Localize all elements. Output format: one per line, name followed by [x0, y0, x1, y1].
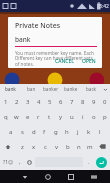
staticText: back [86, 86, 97, 92]
button[interactable]: j [72, 124, 83, 139]
button[interactable]: Back [13, 170, 36, 183]
button[interactable]: n [73, 139, 84, 154]
staticText: y [59, 113, 63, 121]
staticText: 3:42 [99, 3, 109, 10]
button[interactable]: e [22, 109, 33, 124]
staticText: o [92, 113, 96, 121]
staticText: 9 [92, 98, 96, 106]
staticText: 8 [81, 98, 85, 106]
button[interactable]: 5 [44, 94, 55, 109]
staticText: u [70, 113, 74, 121]
button[interactable]: b [62, 139, 73, 154]
staticText: d [32, 128, 36, 136]
staticText: 7 [70, 98, 74, 106]
staticText: p [103, 113, 107, 121]
staticText: q [4, 113, 8, 121]
button[interactable]: x [28, 139, 40, 154]
button[interactable]: k [83, 124, 94, 139]
staticText: g [54, 128, 58, 136]
button[interactable]: m [84, 139, 95, 154]
staticText: bank [15, 35, 31, 44]
staticText: ban [27, 86, 36, 92]
button[interactable]: Recent apps [59, 170, 82, 183]
staticText: i [82, 113, 84, 121]
staticText: f [43, 128, 46, 136]
staticText: k [87, 128, 91, 136]
button[interactable]: Backspace [95, 139, 110, 154]
button[interactable]: v [51, 139, 62, 154]
button[interactable]: back [81, 84, 101, 94]
button[interactable]: 8 [77, 94, 88, 109]
button[interactable]: 6 [55, 94, 66, 109]
staticText: m [87, 143, 93, 151]
button[interactable]: i [77, 109, 88, 124]
staticText: 1 [4, 98, 8, 106]
button[interactable]: CANCEL [52, 56, 77, 67]
button[interactable]: l [94, 124, 105, 139]
button[interactable]: Switch keyboard [82, 170, 105, 183]
staticText: e [26, 113, 30, 121]
staticText: v [55, 143, 59, 151]
staticText: CANCEL [55, 58, 74, 65]
staticText: r [37, 113, 40, 121]
staticText: a [9, 128, 13, 136]
staticText: 6 [59, 98, 63, 106]
button[interactable]: a [5, 124, 17, 139]
button[interactable]: 7 [66, 94, 77, 109]
button[interactable]: , [15, 155, 24, 169]
button[interactable]: d [28, 124, 39, 139]
staticText: ?1☺ [3, 159, 14, 166]
staticText: , [19, 158, 21, 166]
button[interactable]: g [50, 124, 61, 139]
button[interactable]: q [0, 109, 11, 124]
staticText: h [65, 128, 69, 136]
button[interactable]: 1 [0, 94, 11, 109]
staticText: 0 [103, 98, 107, 106]
staticText: 3 [26, 98, 30, 106]
button[interactable]: u [66, 109, 77, 124]
staticText: s [21, 128, 24, 136]
button[interactable]: bank [15, 35, 97, 47]
button[interactable]: c [40, 139, 51, 154]
button[interactable]: . [84, 155, 93, 169]
button[interactable]: ban [21, 84, 41, 94]
staticText: c [44, 143, 47, 151]
staticText: l [99, 128, 101, 136]
button[interactable]: More suggestions [101, 84, 110, 94]
button[interactable]: 2 [11, 94, 22, 109]
staticText: banker [43, 86, 59, 92]
button[interactable]: ?1☺ [1, 155, 15, 169]
button[interactable]: Enter [96, 157, 107, 168]
staticText: OPEN [82, 58, 96, 65]
button[interactable]: 9 [88, 94, 99, 109]
button[interactable]: t [44, 109, 55, 124]
staticText: x [32, 143, 36, 151]
staticText: . [88, 158, 90, 166]
button[interactable]: OPEN [79, 56, 99, 67]
button[interactable]: 0 [99, 94, 110, 109]
button[interactable]: p [99, 109, 110, 124]
button[interactable]: banker [41, 84, 61, 94]
button[interactable]: f [39, 124, 50, 139]
staticText: bank [5, 86, 16, 92]
button[interactable]: 3 [22, 94, 33, 109]
button[interactable]: Home [36, 170, 59, 183]
button[interactable]: r [33, 109, 44, 124]
staticText: w [14, 113, 19, 121]
button[interactable]: Emoji [24, 155, 34, 169]
button[interactable]: s [17, 124, 28, 139]
staticText: 2 [15, 98, 19, 106]
button[interactable]: h [61, 124, 72, 139]
button[interactable]: bank [0, 84, 21, 94]
staticText: 4 [37, 98, 41, 106]
button[interactable]: w [11, 109, 22, 124]
button[interactable]: 4 [33, 94, 44, 109]
button[interactable]: banke [61, 84, 81, 94]
staticText: banke [64, 86, 78, 92]
button[interactable]: y [55, 109, 66, 124]
button[interactable]: z [16, 139, 28, 154]
button[interactable]: Shift [0, 139, 16, 154]
staticText: Private Notes [15, 21, 61, 31]
button[interactable]: o [88, 109, 99, 124]
